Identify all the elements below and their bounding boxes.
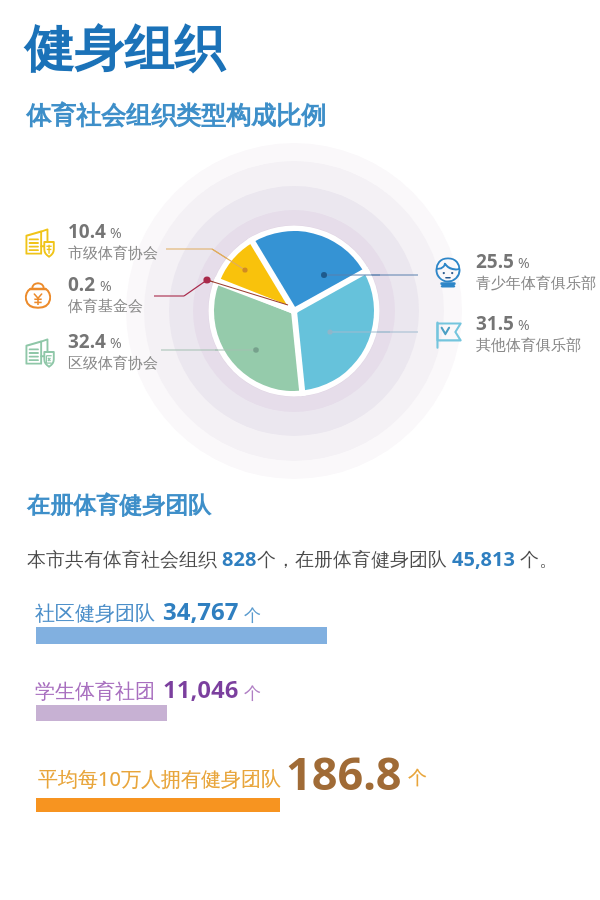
button[interactable]: 其他体育俱乐部 [428, 310, 581, 355]
button[interactable]: 体育基金会 [18, 271, 143, 316]
button[interactable]: 区级体育协会 [18, 328, 158, 373]
staticText: % [100, 276, 112, 295]
other: 青少年体育俱乐部 [428, 251, 468, 291]
staticText: 10.4 [68, 218, 106, 244]
staticText: 31.5 [476, 310, 514, 336]
staticText: 个 [408, 766, 427, 790]
staticText: 本市共有体育社会组织 [27, 546, 222, 572]
staticText: % [110, 333, 122, 352]
staticText: 个，在册体育健身团队 [257, 546, 452, 572]
staticText: 25.5 [476, 248, 514, 274]
staticText: 在册体育健身团队 [27, 491, 211, 520]
staticText: 828 [222, 545, 257, 572]
staticText: 11,046 [163, 672, 239, 705]
button[interactable]: 社区健身团队 [32, 590, 332, 648]
staticText: 个 [244, 683, 261, 704]
staticText: 健身组织 [24, 18, 224, 81]
staticText: % [110, 223, 122, 242]
other: 体育基金会 [18, 274, 58, 314]
staticText: 个。 [515, 546, 558, 572]
button[interactable]: 青少年体育俱乐部 [428, 248, 596, 293]
staticText: 体育基金会 [68, 297, 143, 316]
button[interactable]: 平均每10万人拥有健身团队 [32, 738, 432, 814]
other: 区级体育协会 [18, 331, 58, 371]
other: 市级体育协会 [18, 221, 58, 261]
staticText: 45,813 [452, 545, 515, 572]
staticText: 体育社会组织类型构成比例 [26, 100, 326, 131]
button[interactable]: 学生体育社团 [32, 668, 332, 725]
staticText: % [518, 315, 530, 334]
staticText: 学生体育社团 [35, 679, 155, 704]
staticText: % [518, 253, 530, 272]
button[interactable]: 市级体育协会 [18, 218, 158, 263]
staticText: 34,767 [163, 594, 239, 627]
staticText: 市级体育协会 [68, 244, 158, 263]
staticText: 186.8 [286, 742, 402, 803]
staticText: 32.4 [68, 328, 106, 354]
staticText: 社区健身团队 [35, 601, 155, 626]
staticText: 青少年体育俱乐部 [476, 274, 596, 293]
staticText: 其他体育俱乐部 [476, 336, 581, 355]
staticText: 区级体育协会 [68, 354, 158, 373]
staticText: 平均每10万人拥有健身团队 [38, 765, 281, 792]
other: 其他体育俱乐部 [428, 313, 468, 353]
staticText: 0.2 [68, 271, 96, 297]
staticText: 个 [244, 605, 261, 626]
